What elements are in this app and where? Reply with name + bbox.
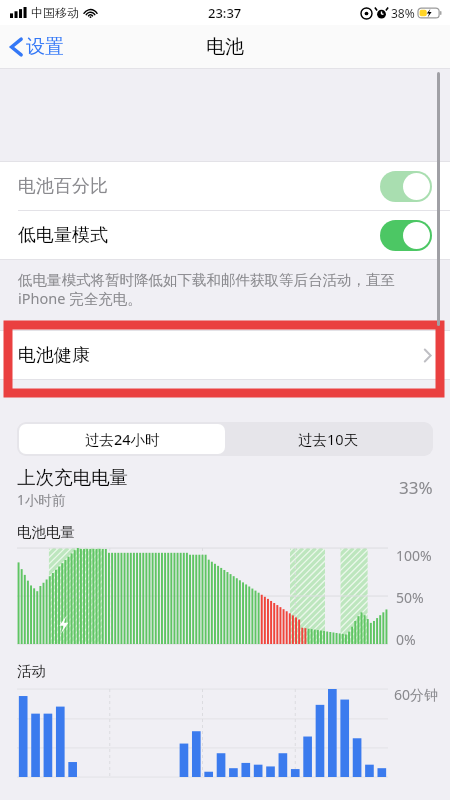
staticText: 中国移动 xyxy=(31,5,79,20)
button[interactable]: 电池健康 xyxy=(0,331,450,379)
staticText: 1小时前 xyxy=(17,491,66,509)
staticText: 低电量模式将暂时降低如下载和邮件获取等后台活动，直至 iPhone 完全充电。 xyxy=(18,269,412,308)
staticText: 0% xyxy=(396,630,416,649)
staticText: 50% xyxy=(396,588,424,607)
staticText: 60分钟 xyxy=(394,685,439,704)
button[interactable]: 过去24小时 xyxy=(19,424,225,454)
staticText: 过去10天 xyxy=(298,429,359,449)
staticText: 低电量模式 xyxy=(18,224,108,247)
staticText: 33% xyxy=(399,476,433,499)
staticText: 电池 xyxy=(206,35,244,59)
staticText: 电池健康 xyxy=(18,344,90,367)
button[interactable]: 低电量模式 xyxy=(0,211,450,259)
staticText: 38% xyxy=(391,5,415,21)
staticText: 电池百分比 xyxy=(18,175,108,198)
staticText: 上次充电电量 xyxy=(17,466,128,489)
button[interactable]: 设置 xyxy=(0,25,74,68)
staticText: 100% xyxy=(396,546,432,565)
staticText: 活动 xyxy=(17,662,46,680)
staticText: 电池电量 xyxy=(17,523,75,541)
staticText: 设置 xyxy=(26,35,64,59)
staticText: 23:37 xyxy=(208,4,242,22)
button[interactable]: 电池百分比 xyxy=(0,162,450,210)
button[interactable]: 过去10天 xyxy=(225,424,431,454)
staticText: 过去24小时 xyxy=(85,429,160,449)
